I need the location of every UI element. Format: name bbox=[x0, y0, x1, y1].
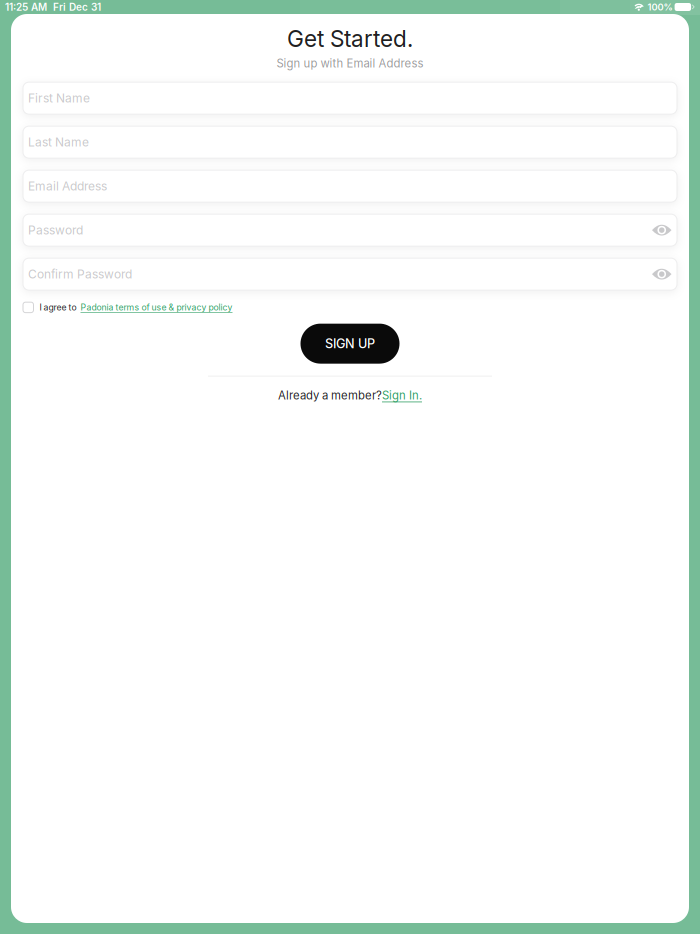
button[interactable]: Agree to terms bbox=[23, 302, 33, 313]
button[interactable]: Password bbox=[23, 214, 677, 246]
staticText: Last Name bbox=[28, 135, 89, 149]
button[interactable]: First Name bbox=[23, 82, 677, 114]
staticText: Padonia terms of use & privacy policy bbox=[80, 302, 232, 313]
staticText: Get Started. bbox=[287, 25, 413, 52]
button[interactable]: Email Address bbox=[23, 170, 677, 202]
staticText: Password bbox=[28, 223, 83, 237]
button[interactable]: Last Name bbox=[23, 126, 677, 158]
staticText: First Name bbox=[28, 91, 90, 105]
staticText: SIGN UP bbox=[325, 336, 375, 351]
staticText: Already a member? bbox=[278, 389, 382, 402]
button[interactable]: Sign In. bbox=[382, 389, 422, 402]
staticText: Confirm Password bbox=[28, 267, 132, 281]
staticText: 100% bbox=[648, 1, 673, 13]
button[interactable]: Padonia terms of use & privacy policy bbox=[80, 302, 232, 313]
staticText: Sign In. bbox=[382, 389, 422, 402]
button[interactable]: SIGN UP bbox=[300, 324, 399, 364]
staticText: I agree to bbox=[39, 302, 76, 313]
staticText: Fri Dec 31 bbox=[53, 1, 101, 13]
staticText: Email Address bbox=[28, 179, 107, 193]
staticText: 11:25 AM bbox=[5, 1, 47, 13]
staticText: Sign up with Email Address bbox=[276, 56, 423, 70]
button[interactable]: Confirm Password bbox=[23, 258, 677, 290]
